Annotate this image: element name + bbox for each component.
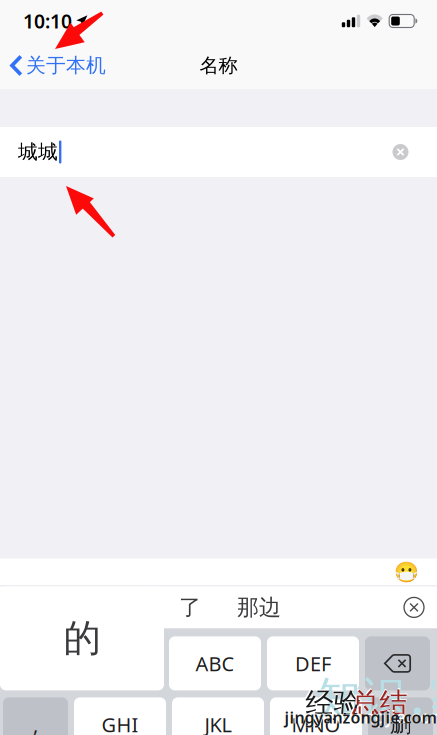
staticText: 总结	[351, 685, 407, 721]
staticText: 城城	[18, 140, 58, 164]
staticText: 删	[390, 711, 411, 735]
staticText: 关于本机	[26, 53, 106, 78]
button[interactable]: 了	[172, 586, 208, 628]
button[interactable]: 删除	[365, 636, 430, 690]
button[interactable]: 收起候选	[391, 586, 437, 628]
staticText: MNO	[291, 711, 340, 735]
button[interactable]: MNO	[270, 697, 362, 735]
staticText: 名称	[199, 53, 237, 78]
staticText: jingyanzongjie.com	[283, 705, 437, 729]
staticText: 经验	[305, 685, 361, 721]
button[interactable]: 清除文本	[364, 127, 437, 177]
button[interactable]: 的	[0, 586, 164, 690]
staticText: 知识․家	[316, 666, 437, 728]
staticText: DEF	[295, 650, 331, 677]
staticText: 10:10	[23, 8, 72, 34]
staticText: 总结	[350, 684, 408, 721]
button[interactable]: 删	[368, 697, 433, 735]
button[interactable]: ABC	[169, 636, 261, 690]
staticText: ABC	[195, 650, 234, 677]
staticText: 的	[63, 615, 100, 662]
staticText: jingyanzongjie.com	[284, 706, 436, 728]
button[interactable]: ,	[3, 697, 68, 735]
button[interactable]: 那边	[232, 586, 286, 628]
button[interactable]: GHI	[74, 697, 166, 735]
staticText: GHI	[101, 711, 138, 735]
staticText: 😷	[394, 560, 419, 584]
button[interactable]: JKL	[172, 697, 264, 735]
staticText: 那边	[237, 593, 281, 621]
button[interactable]: 关于本机	[0, 47, 106, 84]
staticText: 了	[179, 593, 201, 621]
staticText: 经验	[304, 684, 362, 721]
staticText: ,	[33, 711, 38, 735]
staticText: JKL	[204, 711, 231, 735]
button[interactable]: DEF	[267, 636, 359, 690]
